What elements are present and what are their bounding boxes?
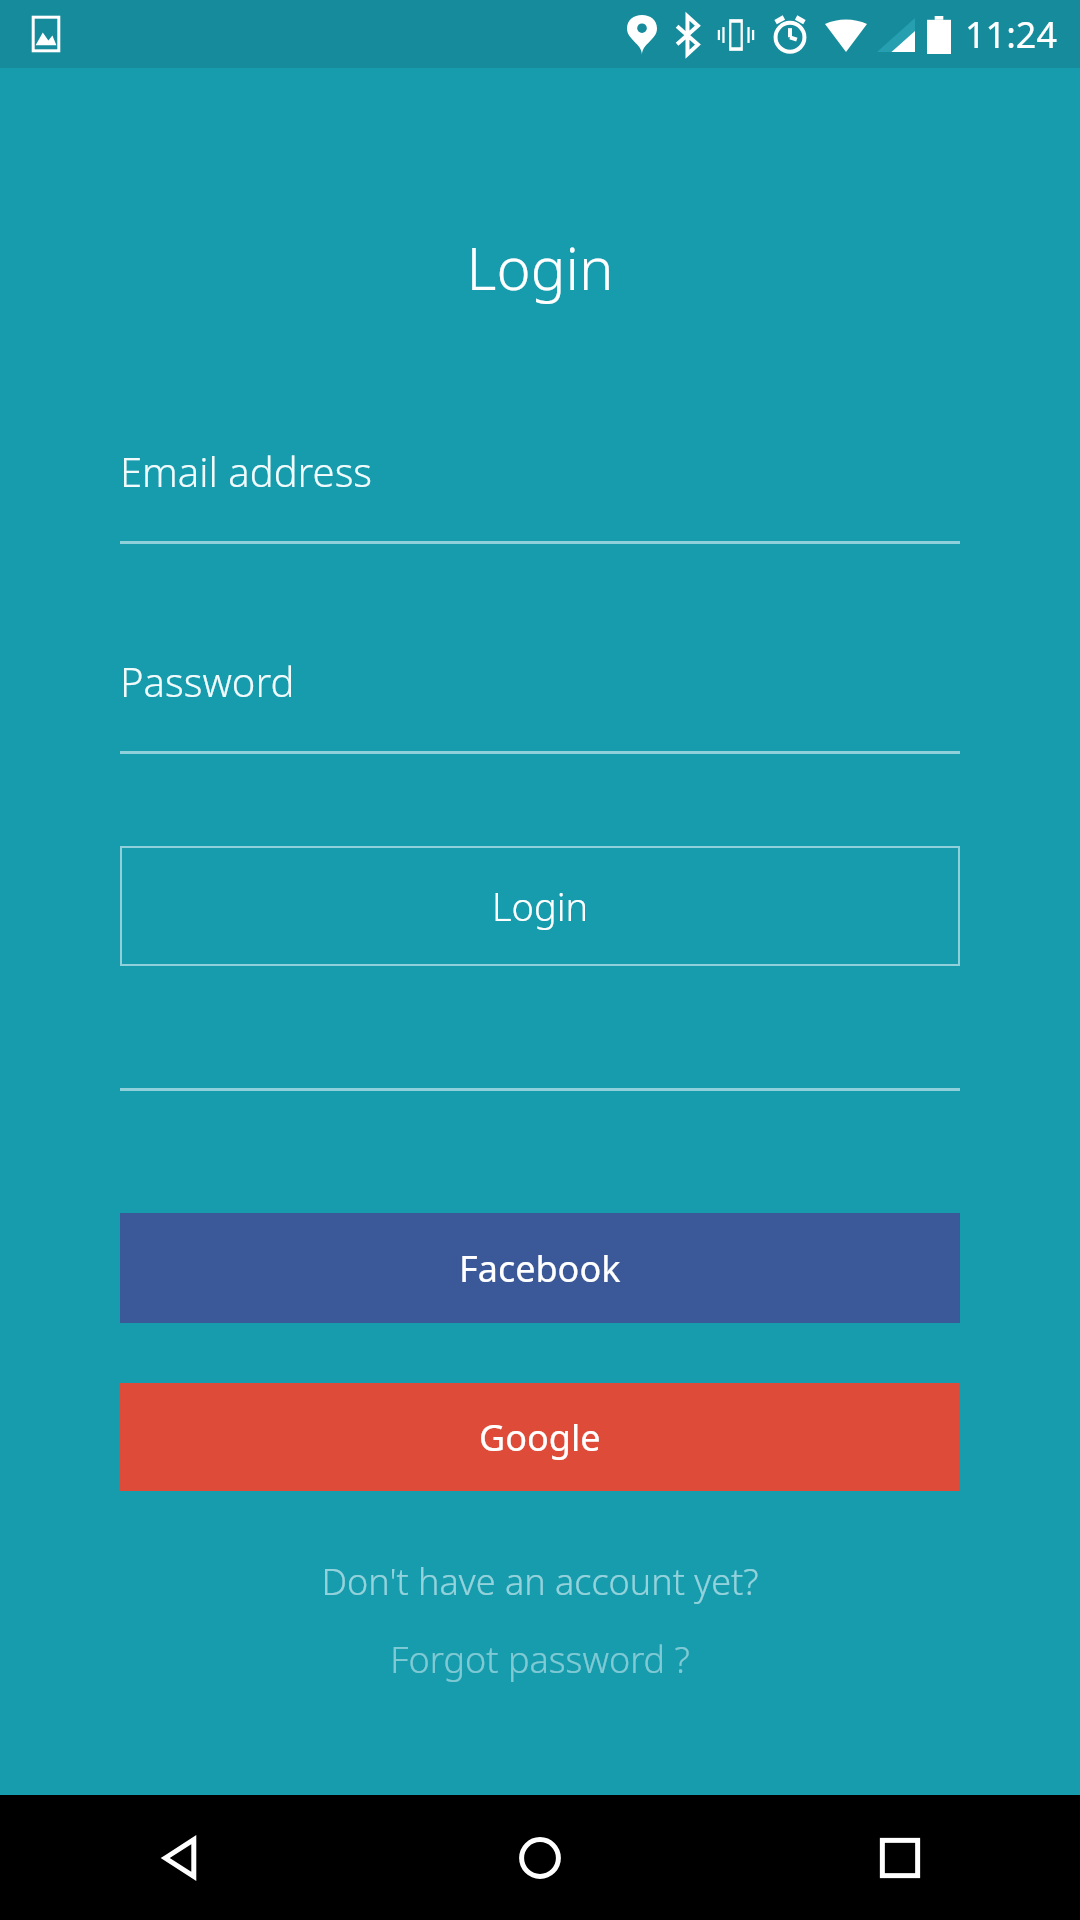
- other: Screenshot: [26, 14, 66, 54]
- staticText: 11:24: [965, 10, 1058, 59]
- button[interactable]: Google: [120, 1383, 960, 1491]
- button[interactable]: Don't have an account yet?: [0, 1543, 1080, 1619]
- button[interactable]: Facebook: [120, 1213, 960, 1323]
- staticText: Facebook: [459, 1244, 621, 1293]
- button[interactable]: Email address: [120, 410, 960, 548]
- button[interactable]: Forgot password ?: [0, 1621, 1080, 1697]
- button[interactable]: Login: [120, 846, 960, 966]
- staticText: Don't have an account yet?: [321, 1557, 759, 1606]
- button[interactable]: Back: [0, 1795, 360, 1920]
- staticText: Login: [0, 228, 1080, 307]
- staticText: Google: [479, 1413, 601, 1462]
- staticText: Forgot password ?: [390, 1635, 690, 1684]
- staticText: Password: [120, 654, 295, 708]
- button[interactable]: Password: [120, 620, 960, 758]
- button[interactable]: Recent apps: [720, 1795, 1080, 1920]
- staticText: Email address: [120, 444, 373, 498]
- staticText: Login: [492, 880, 589, 932]
- button[interactable]: Home: [360, 1795, 720, 1920]
